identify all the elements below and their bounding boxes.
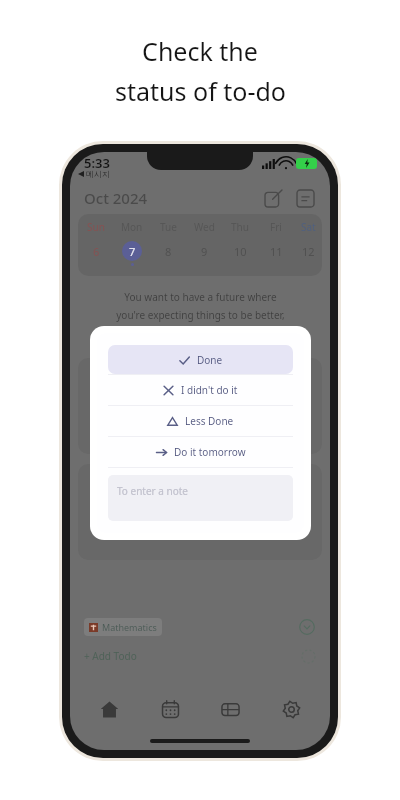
staticText: Mon — [121, 220, 143, 234]
staticText: you're expecting things to be better, — [116, 308, 285, 322]
staticText: 9 — [201, 244, 208, 259]
button[interactable]: + Add Todo — [84, 640, 316, 672]
button[interactable]: Sun — [78, 220, 114, 261]
staticText: 메시지 — [86, 169, 110, 179]
staticText: + Add Todo — [84, 649, 137, 663]
button[interactable]: Expand — [298, 618, 316, 636]
staticText: 7 — [129, 244, 136, 259]
staticText: Sat — [301, 220, 316, 234]
staticText: 11 — [270, 244, 283, 259]
staticText: 6 — [93, 244, 100, 259]
staticText: Less Done — [185, 414, 234, 428]
button[interactable]: Mon — [114, 220, 150, 266]
button[interactable]: Home — [87, 687, 131, 731]
button[interactable]: I didn't do it — [108, 375, 293, 405]
staticText: Wed — [194, 220, 215, 234]
staticText: You want to have a future where — [124, 290, 277, 304]
button[interactable]: Calendar — [148, 687, 192, 731]
staticText: I didn't do it — [181, 383, 238, 397]
button[interactable]: Table — [208, 687, 252, 731]
button[interactable]: List — [294, 187, 316, 209]
staticText: 12 — [302, 244, 315, 259]
staticText: To enter a note — [117, 484, 188, 498]
button[interactable]: Thu — [222, 220, 258, 261]
button[interactable]: Do it tomorrow — [108, 437, 293, 467]
staticText: Oct 2024 — [84, 188, 148, 208]
button[interactable]: Less Done — [108, 406, 293, 436]
button[interactable]: To enter a note — [108, 475, 293, 521]
button[interactable]: Sat — [294, 220, 322, 261]
staticText: 10 — [234, 244, 247, 259]
staticText: Fri — [270, 220, 282, 234]
button[interactable]: Done — [108, 345, 293, 374]
staticText: Done — [197, 353, 223, 367]
staticText: 8 — [165, 244, 172, 259]
button[interactable]: Edit — [262, 187, 284, 209]
staticText: Tue — [160, 220, 177, 234]
staticText: Sun — [87, 220, 105, 234]
staticText: 5:33 — [84, 154, 110, 172]
button[interactable]: Mathematics — [84, 614, 316, 640]
staticText: status of to-do — [115, 74, 286, 108]
staticText: Mathematics — [102, 621, 157, 633]
staticText: Check the — [142, 34, 258, 68]
staticText: Thu — [231, 220, 249, 234]
button[interactable]: Settings — [269, 687, 313, 731]
staticText: Do it tomorrow — [174, 445, 246, 459]
